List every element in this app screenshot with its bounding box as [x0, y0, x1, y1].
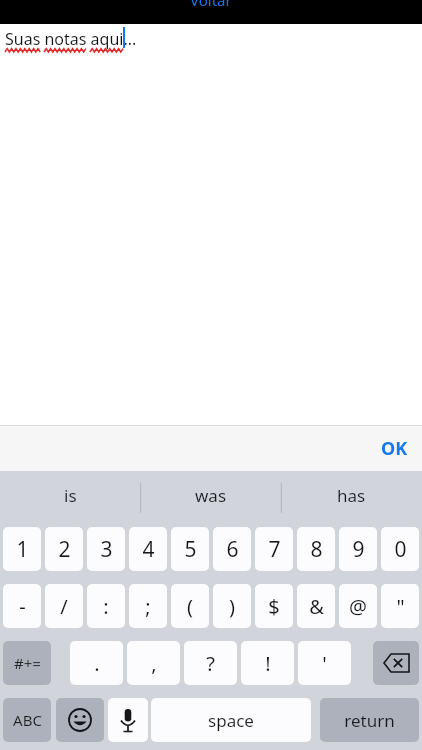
button[interactable]: 6	[213, 527, 251, 571]
button[interactable]: ,	[127, 641, 180, 685]
button[interactable]: Dictate	[108, 698, 148, 742]
button[interactable]: 9	[339, 527, 377, 571]
staticText: 6	[226, 535, 239, 564]
button[interactable]: #+=	[3, 641, 51, 685]
button[interactable]: Voltar	[190, 0, 232, 10]
button[interactable]: 7	[255, 527, 293, 571]
staticText: -	[19, 593, 26, 620]
button[interactable]: "	[381, 584, 419, 628]
button[interactable]: 2	[45, 527, 83, 571]
button[interactable]: '	[298, 641, 351, 685]
button[interactable]: OK	[381, 436, 408, 461]
staticText: 3	[100, 535, 113, 564]
staticText: /	[60, 593, 68, 620]
button[interactable]: return	[320, 698, 419, 742]
staticText: '	[322, 650, 327, 677]
staticText: !	[265, 650, 271, 677]
button[interactable]: 5	[171, 527, 209, 571]
button[interactable]: ABC	[3, 698, 51, 742]
button[interactable]: is	[0, 471, 140, 520]
button[interactable]: 3	[87, 527, 125, 571]
button[interactable]: .	[70, 641, 123, 685]
staticText: 0	[394, 535, 407, 564]
staticText: 9	[352, 535, 365, 564]
button[interactable]: 1	[3, 527, 41, 571]
button[interactable]: Backspace	[373, 641, 419, 685]
staticText: has	[337, 484, 366, 507]
staticText: ,	[151, 650, 157, 677]
staticText: ABC	[13, 710, 42, 730]
staticText: 1	[16, 535, 29, 564]
staticText: space	[208, 709, 254, 732]
button[interactable]: @	[339, 584, 377, 628]
staticText: .	[94, 650, 100, 677]
staticText: 5	[184, 535, 197, 564]
staticText: )	[229, 593, 235, 620]
button[interactable]: 4	[129, 527, 167, 571]
button[interactable]: $	[255, 584, 293, 628]
staticText: 8	[310, 535, 323, 564]
button[interactable]: )	[213, 584, 251, 628]
button[interactable]: was	[140, 471, 281, 520]
staticText: "	[396, 593, 405, 620]
staticText: 2	[58, 535, 71, 564]
button[interactable]: -	[3, 584, 41, 628]
button[interactable]: 0	[381, 527, 419, 571]
staticText: (	[187, 593, 193, 620]
staticText: ;	[145, 593, 151, 620]
staticText: Suas notas aqui...	[5, 28, 137, 50]
button[interactable]: Emoji	[56, 698, 104, 742]
staticText: #+=	[14, 653, 41, 673]
staticText: 4	[142, 535, 155, 564]
button[interactable]: (	[171, 584, 209, 628]
staticText: @	[349, 593, 367, 620]
button[interactable]: !	[241, 641, 294, 685]
button[interactable]: /	[45, 584, 83, 628]
button[interactable]: &	[297, 584, 335, 628]
button[interactable]: space	[151, 698, 311, 742]
staticText: return	[344, 709, 395, 732]
staticText: Voltar	[190, 0, 232, 10]
staticText: 7	[268, 535, 281, 564]
button[interactable]: :	[87, 584, 125, 628]
staticText: is	[64, 484, 77, 507]
staticText: $	[268, 593, 280, 620]
staticText: :	[103, 593, 109, 620]
button[interactable]: ?	[184, 641, 237, 685]
staticText: ?	[206, 650, 215, 677]
button[interactable]: 8	[297, 527, 335, 571]
staticText: &	[309, 593, 324, 620]
staticText: was	[195, 484, 227, 507]
button[interactable]: has	[281, 471, 422, 520]
button[interactable]: ;	[129, 584, 167, 628]
staticText: OK	[381, 436, 408, 461]
